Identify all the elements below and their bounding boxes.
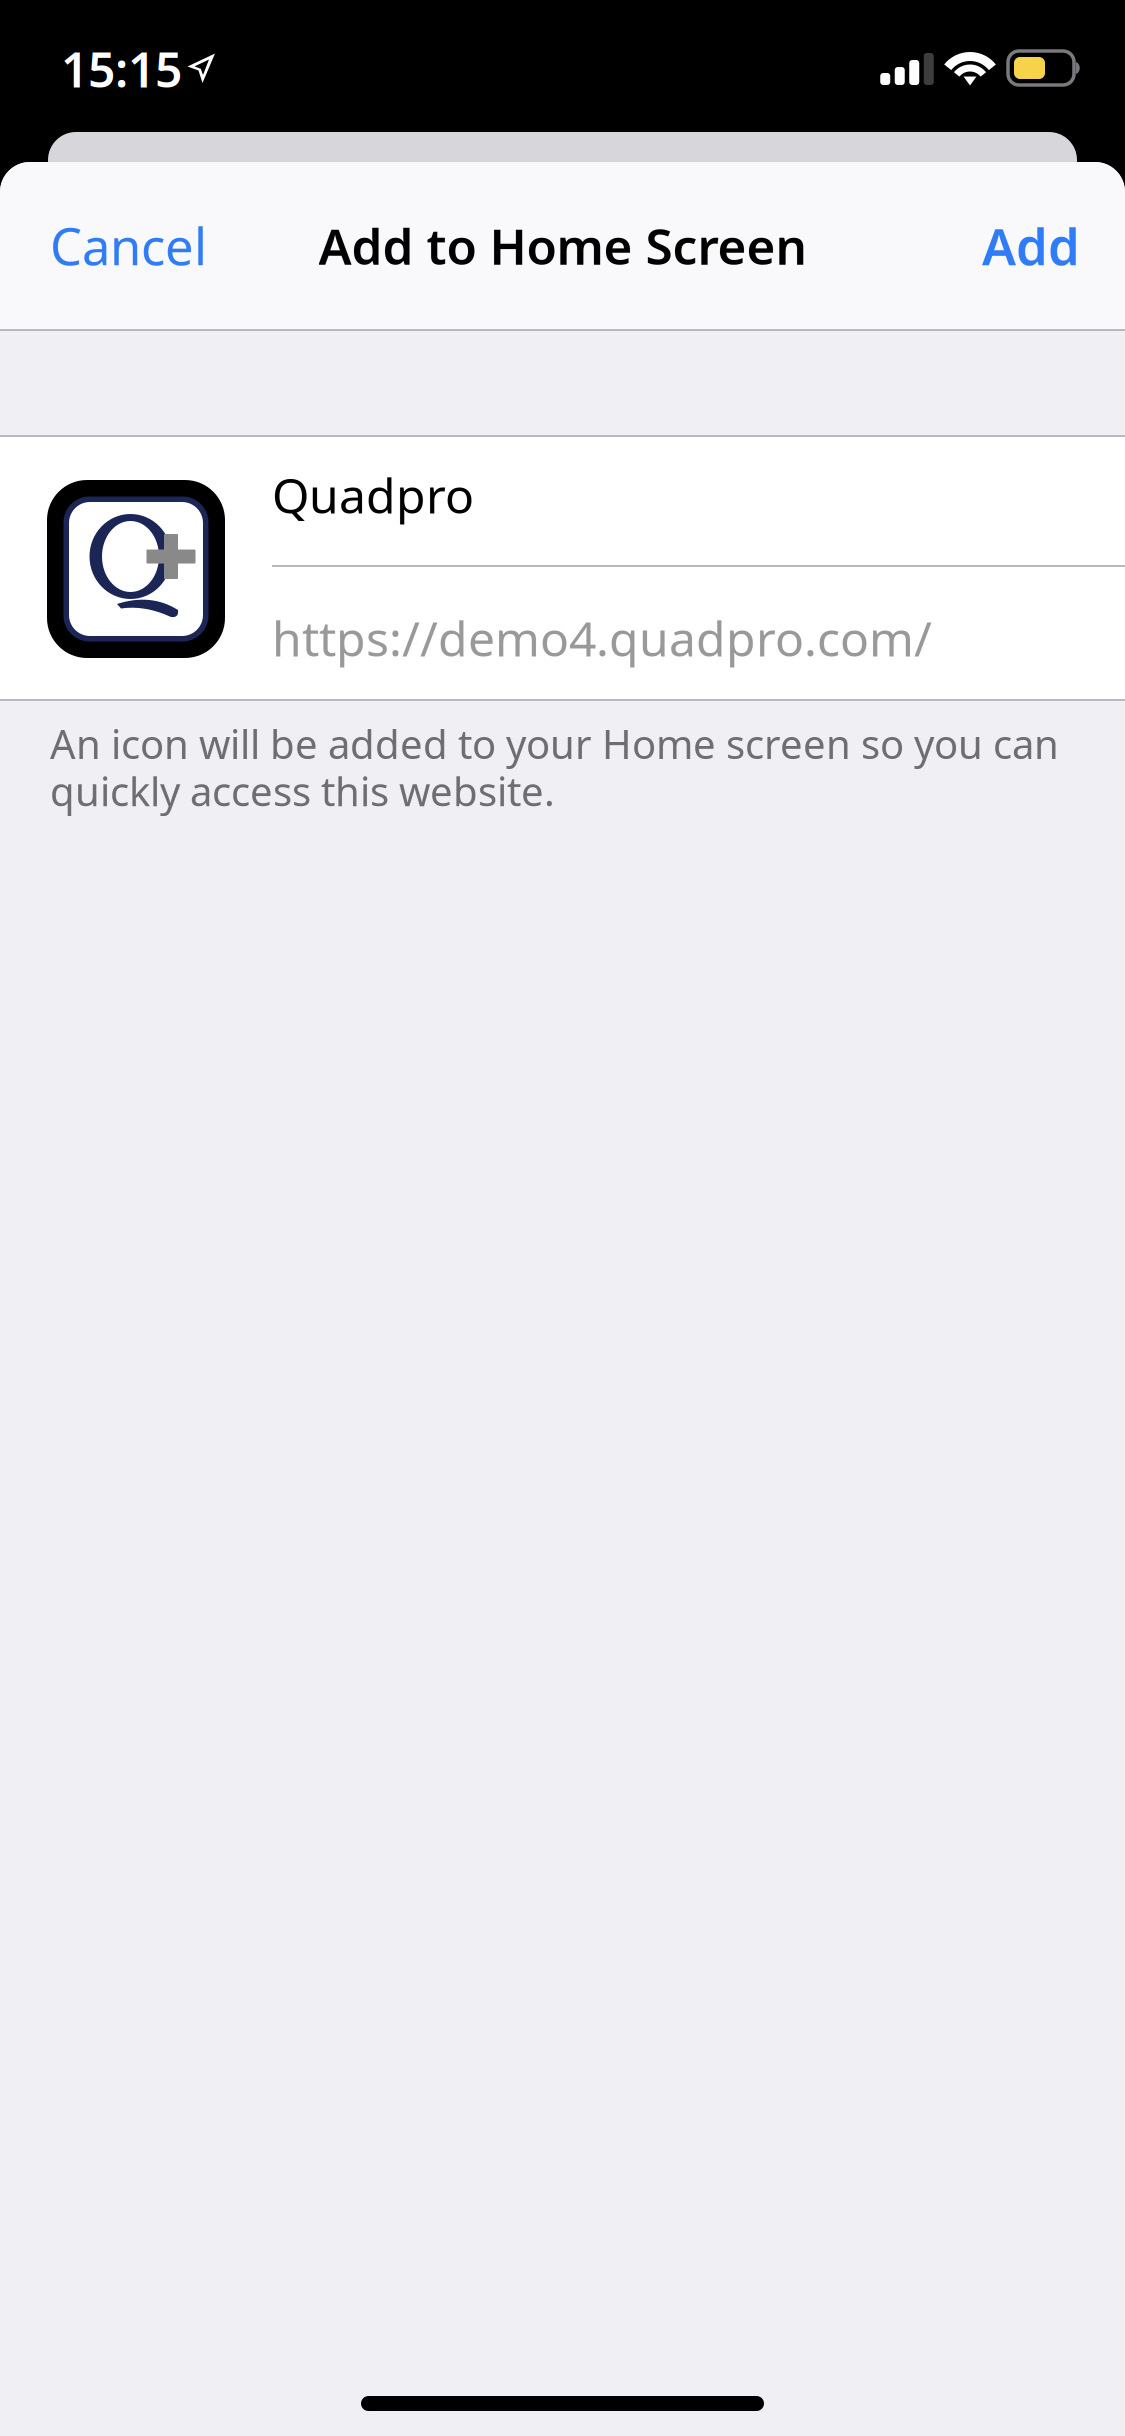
staticText: Cancel xyxy=(50,212,207,279)
button[interactable]: Add xyxy=(956,162,1125,329)
staticText: https://demo4.quadpro.com/ xyxy=(272,606,932,670)
button[interactable]: Cancel xyxy=(0,162,233,329)
button[interactable]: https://demo4.quadpro.com/ xyxy=(272,567,1125,699)
staticText: Add to Home Screen xyxy=(318,213,806,278)
staticText: Quadpro xyxy=(272,463,474,527)
staticText: An icon will be added to your Home scree… xyxy=(50,717,1059,817)
button[interactable]: Quadpro xyxy=(272,437,1125,565)
staticText: 15:15 xyxy=(61,37,182,101)
staticText: Add xyxy=(982,212,1080,279)
